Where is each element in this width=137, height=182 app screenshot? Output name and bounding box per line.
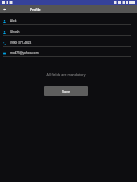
staticText: Ghosh [10,30,20,34]
button[interactable]: (990) 371-4823 [0,37,137,46]
staticText: Profile [30,7,41,12]
staticText: mail75@yahoo.com [10,51,39,55]
button[interactable]: Ghosh [0,26,137,35]
button[interactable]: Alok [0,15,137,24]
staticText: All fields are mandatory [0,72,132,77]
staticText: Alok [10,19,17,23]
button[interactable]: Back [0,5,8,13]
staticText: Save [62,89,70,94]
staticText: (990) 371-4823 [10,41,32,45]
button[interactable]: mail75@yahoo.com [0,47,137,56]
button[interactable]: Save [44,86,88,96]
